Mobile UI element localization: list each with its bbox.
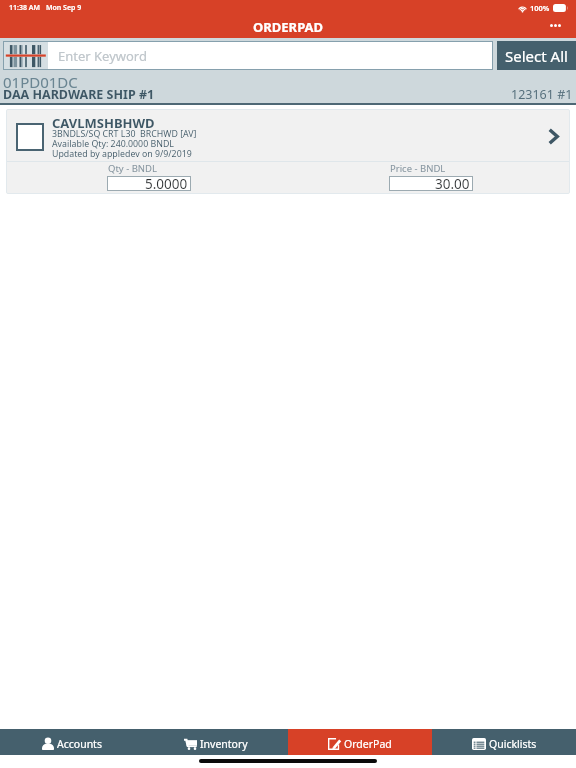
staticText: Price - BNDL: [390, 162, 446, 175]
staticText: 30.00: [435, 175, 470, 190]
staticText: 5.0000: [145, 175, 188, 190]
button[interactable]: OrderPad: [288, 729, 432, 755]
button[interactable]: 5.0000: [107, 176, 191, 191]
button[interactable]: Inventory: [144, 729, 288, 755]
button[interactable]: Quicklists: [432, 729, 576, 755]
staticText: Inventory: [200, 737, 248, 751]
button[interactable]: Select All: [497, 41, 576, 70]
staticText: 01PD01DC: [3, 72, 78, 92]
button[interactable]: Select item: [6, 109, 570, 194]
staticText: Select All: [505, 46, 568, 66]
staticText: CAVLMSHBHWD: [52, 114, 155, 132]
button[interactable]: Select item: [16, 123, 44, 151]
staticText: Quicklists: [489, 737, 537, 751]
button[interactable]: Open item details: [534, 109, 570, 161]
staticText: OrderPad: [344, 737, 392, 751]
button[interactable]: Enter Keyword: [3, 41, 493, 70]
staticText: Available Qty: 240.0000 BNDL: [52, 138, 174, 150]
button[interactable]: 30.00: [389, 176, 473, 191]
staticText: Mon Sep 9: [46, 3, 82, 13]
staticText: Updated by appledev on 9/9/2019: [52, 148, 192, 160]
staticText: DAA HARDWARE SHIP #1: [3, 86, 155, 103]
staticText: Accounts: [57, 737, 102, 751]
button[interactable]: More options: [542, 18, 568, 33]
staticText: ORDERPAD: [253, 18, 324, 36]
staticText: 11:38 AM: [9, 3, 40, 13]
staticText: Enter Keyword: [58, 47, 147, 65]
staticText: 3BNDLS/SQ CRT L30 BRCHWD [AV]: [52, 128, 197, 140]
button[interactable]: Accounts: [0, 729, 144, 755]
staticText: 123161 #1: [511, 86, 573, 103]
staticText: 100%: [530, 3, 550, 13]
staticText: Qty - BNDL: [108, 162, 158, 175]
